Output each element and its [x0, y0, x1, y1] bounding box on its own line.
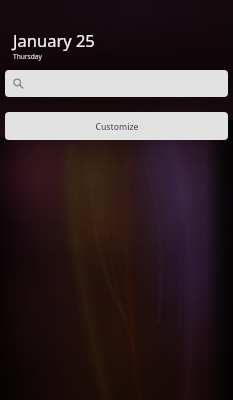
- staticText: Thursday: [13, 52, 42, 61]
- other: Search: [9, 74, 25, 90]
- button[interactable]: Customize: [5, 112, 228, 140]
- staticText: Customize: [95, 121, 139, 133]
- button[interactable]: Search: [5, 70, 228, 97]
- staticText: January 25: [13, 29, 95, 51]
